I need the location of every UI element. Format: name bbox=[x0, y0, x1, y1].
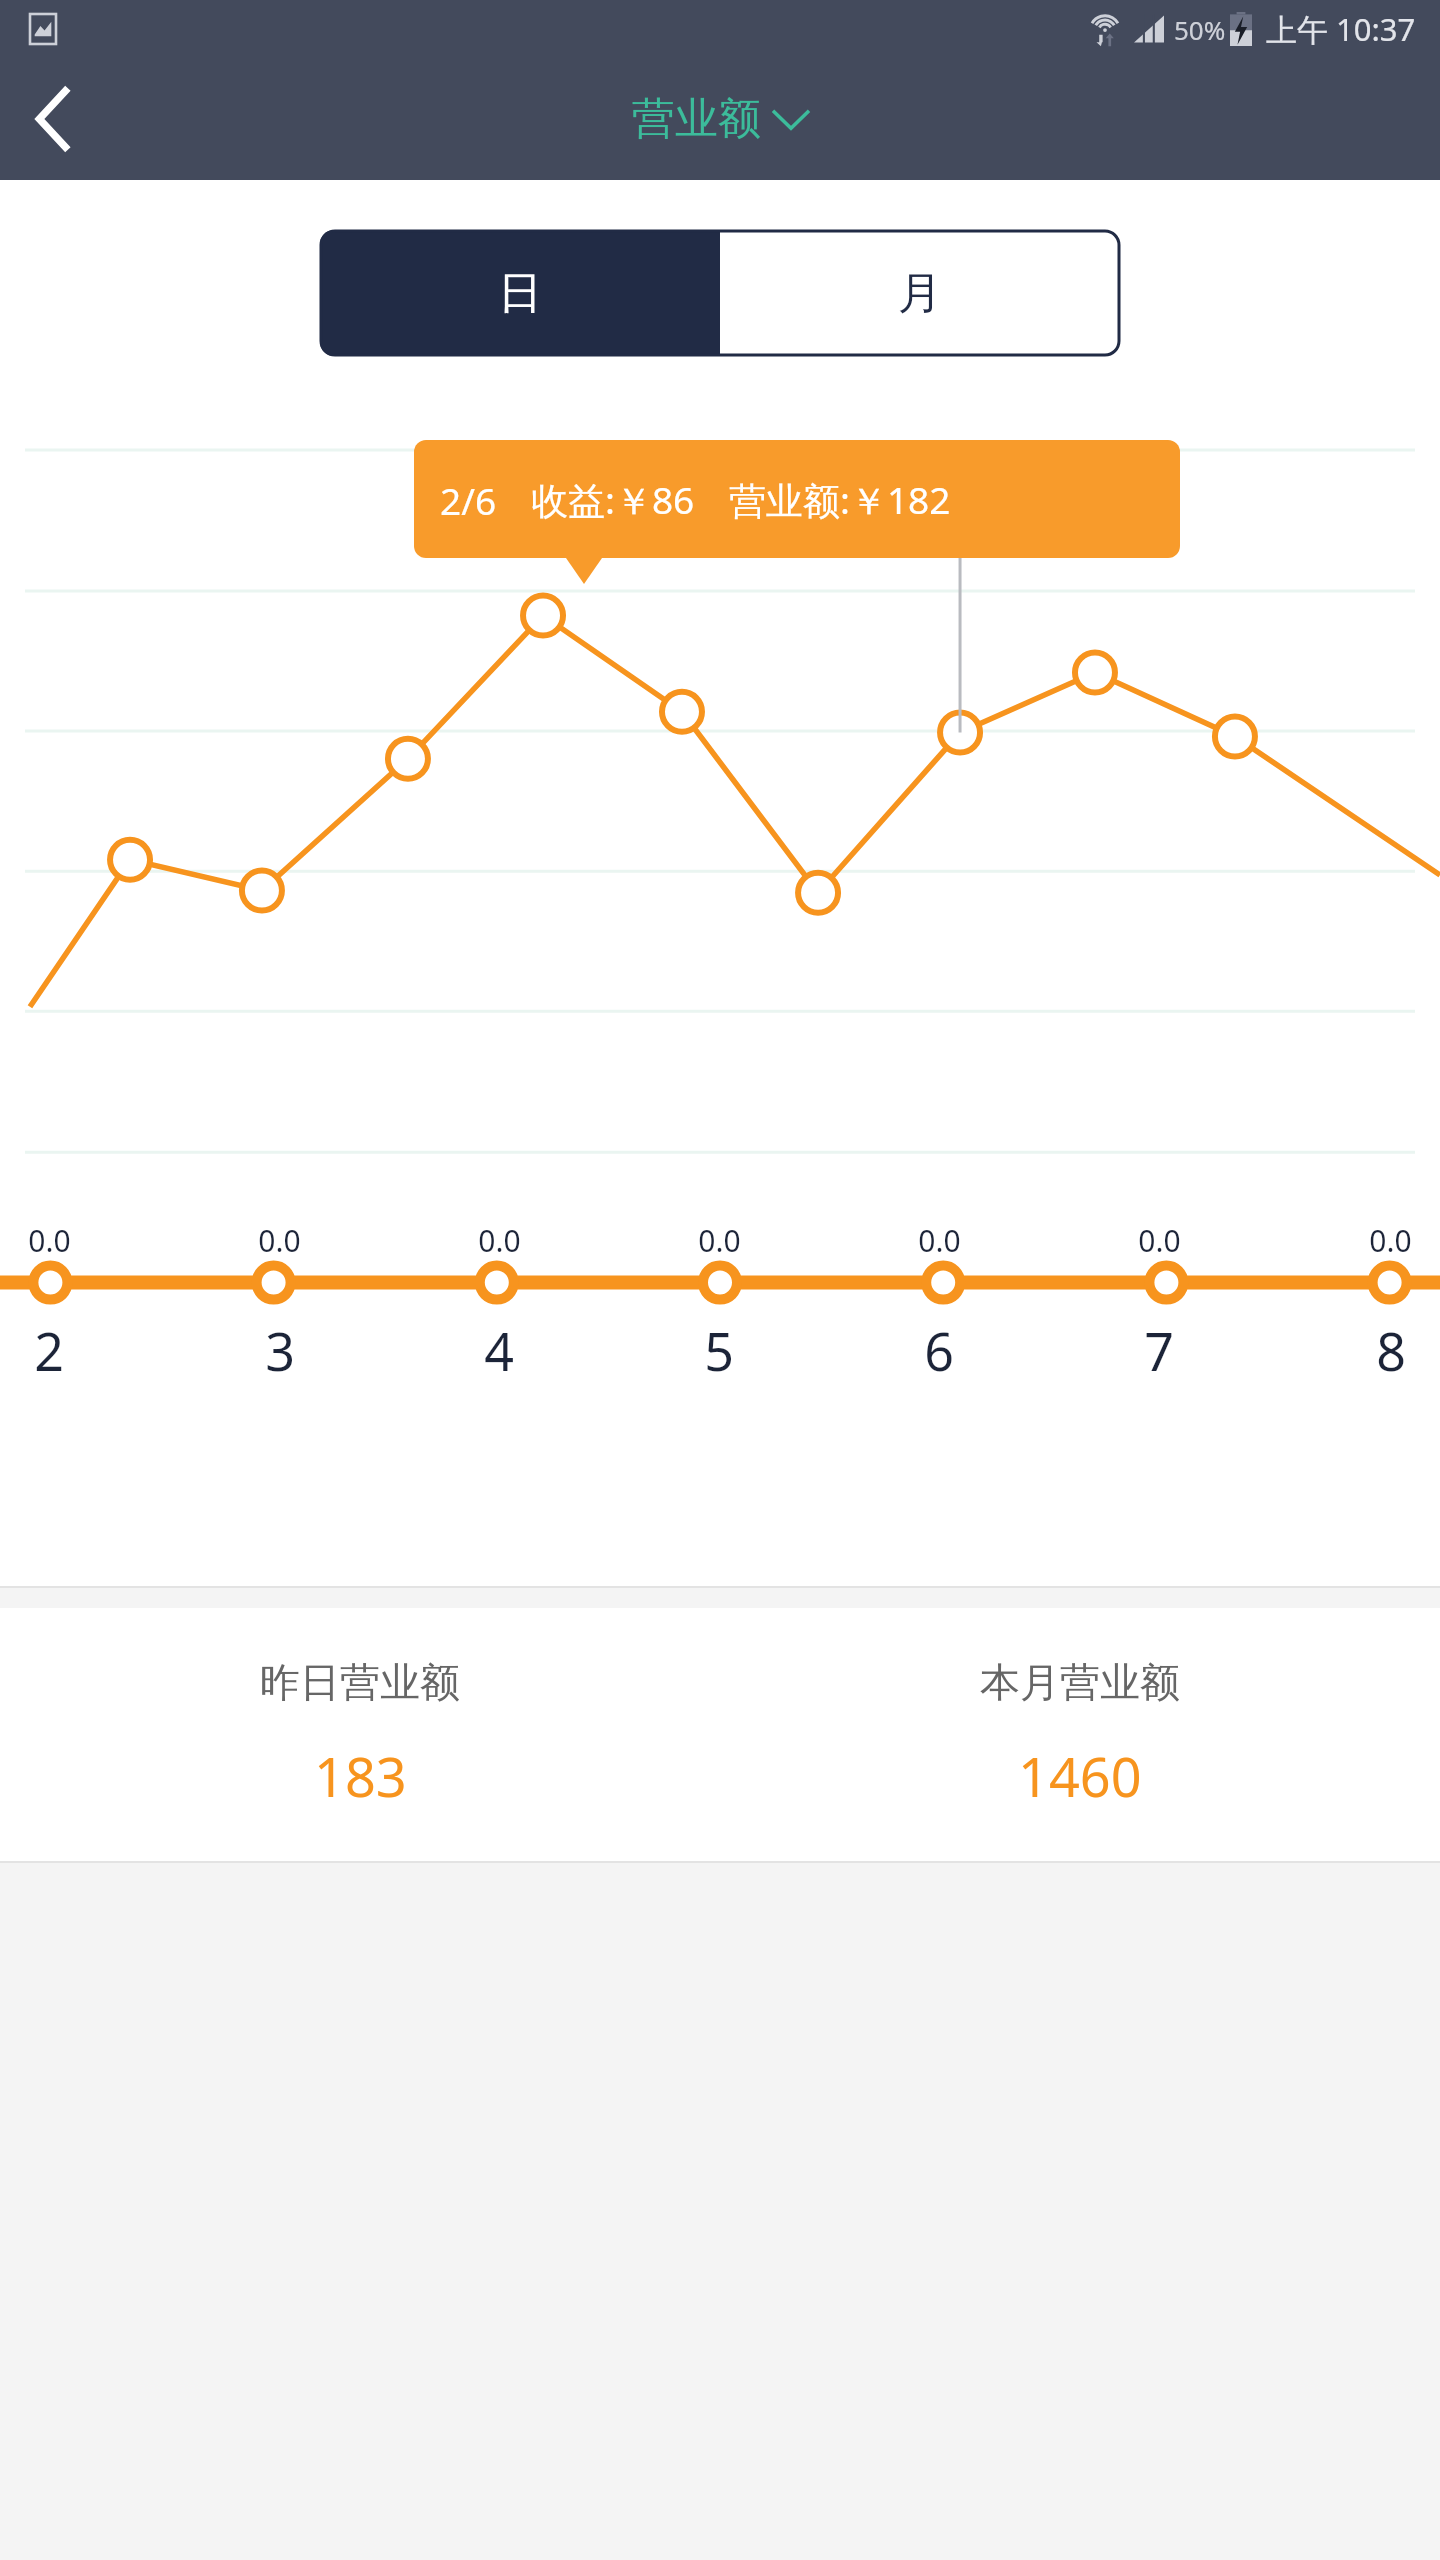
staticText: 0.0 bbox=[1369, 1220, 1412, 1261]
staticText: 4 bbox=[484, 1315, 514, 1386]
staticText: 1460 bbox=[1018, 1739, 1142, 1813]
staticText: 0.0 bbox=[918, 1220, 961, 1261]
staticText: 0.0 bbox=[258, 1220, 301, 1261]
staticText: 8 bbox=[1376, 1315, 1406, 1386]
staticText: 2 bbox=[34, 1315, 64, 1386]
staticText: 3 bbox=[265, 1315, 295, 1386]
staticText: 上午 10:37 bbox=[1266, 8, 1416, 50]
staticText: 7 bbox=[1144, 1315, 1174, 1386]
staticText: 50% bbox=[1174, 12, 1226, 47]
button[interactable]: 日 bbox=[320, 230, 720, 356]
staticText: 5 bbox=[704, 1315, 734, 1386]
staticText: 本月营业额 bbox=[980, 1657, 1180, 1707]
staticText: 月 bbox=[898, 266, 942, 321]
button[interactable]: 昨日营业额 bbox=[0, 1608, 720, 1861]
staticText: 昨日营业额 bbox=[260, 1657, 460, 1707]
staticText: 0.0 bbox=[1138, 1220, 1181, 1261]
button[interactable]: 2/6 bbox=[414, 440, 1180, 558]
staticText: 2/6 bbox=[440, 475, 497, 525]
staticText: 营业额 bbox=[632, 92, 761, 146]
staticText: 0.0 bbox=[698, 1220, 741, 1261]
staticText: 营业额:￥182 bbox=[729, 474, 951, 525]
button[interactable]: Back bbox=[0, 64, 110, 174]
staticText: 0.0 bbox=[28, 1220, 71, 1261]
button[interactable]: 月 bbox=[720, 230, 1120, 356]
button[interactable]: 本月营业额 bbox=[720, 1608, 1440, 1861]
staticText: 183 bbox=[314, 1739, 407, 1813]
button[interactable]: 营业额 bbox=[632, 92, 809, 146]
staticText: 6 bbox=[924, 1315, 954, 1386]
staticText: 0.0 bbox=[478, 1220, 521, 1261]
staticText: 收益:￥86 bbox=[531, 474, 695, 525]
staticText: 日 bbox=[498, 266, 542, 321]
